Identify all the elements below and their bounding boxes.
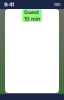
staticText: Guest 10 min — [24, 9, 40, 22]
staticText: 9:41 — [4, 1, 14, 8]
staticText: ooo — [54, 2, 60, 7]
